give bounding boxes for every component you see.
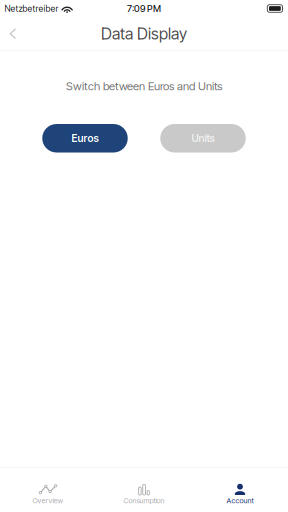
staticText: Netzbetreiber [4, 3, 58, 14]
button[interactable]: Units [160, 124, 246, 152]
staticText: Data Display [101, 24, 187, 43]
button[interactable]: Account [192, 467, 288, 512]
staticText: Account [226, 496, 253, 505]
staticText: Overview [32, 496, 63, 505]
staticText: Switch between Euros and Units [66, 79, 222, 93]
button[interactable]: Euros [42, 124, 128, 152]
staticText: 7:09 PM [127, 3, 161, 14]
button[interactable]: Overview [0, 467, 96, 512]
button[interactable]: Back [0, 19, 29, 48]
staticText: Units [191, 132, 214, 145]
button[interactable]: Consumption [96, 467, 192, 512]
staticText: Euros [71, 132, 98, 145]
staticText: Consumption [123, 496, 164, 505]
